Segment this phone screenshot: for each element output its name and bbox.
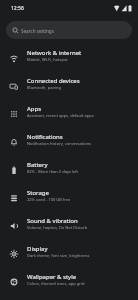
staticText: Assistant, recent apps, default apps — [27, 113, 94, 118]
button[interactable]: Display — [0, 240, 138, 268]
button[interactable]: Wallpaper & style — [0, 268, 138, 296]
staticText: 82% - More than 2 days left — [27, 169, 78, 174]
button[interactable]: Storage — [0, 184, 138, 212]
staticText: Volume, haptics, Do Not Disturb — [27, 225, 88, 230]
staticText: Search settings — [21, 28, 54, 34]
staticText: 22% used - 100 GB free — [27, 197, 71, 202]
staticText: Mobile, Wi-Fi, hotspot — [27, 57, 68, 62]
staticText: Colors, themed icons, app grid — [27, 281, 85, 286]
staticText: Dark theme, font size, brightness — [27, 253, 90, 258]
button[interactable]: Sound & vibration — [0, 212, 138, 240]
button[interactable]: Search settings — [6, 21, 132, 39]
staticText: Bluetooth, pairing — [27, 85, 62, 90]
staticText: Network & internet — [27, 49, 82, 57]
staticText: Sound & vibration — [27, 217, 78, 225]
button[interactable]: Battery — [0, 156, 138, 184]
button[interactable]: Connected devices — [0, 72, 138, 100]
button[interactable]: Network & internet — [0, 44, 138, 72]
staticText: Notification history, conversations — [27, 141, 92, 146]
staticText: Battery — [27, 161, 48, 169]
staticText: Apps — [27, 105, 42, 113]
button[interactable]: Apps — [0, 100, 138, 128]
staticText: Wallpaper & style — [27, 273, 77, 281]
staticText: Storage — [27, 189, 49, 197]
staticText: Notifications — [27, 133, 63, 141]
button[interactable]: Notifications — [0, 128, 138, 156]
staticText: Connected devices — [27, 77, 80, 85]
staticText: Display — [27, 245, 48, 253]
staticText: 12:56 — [11, 5, 24, 12]
